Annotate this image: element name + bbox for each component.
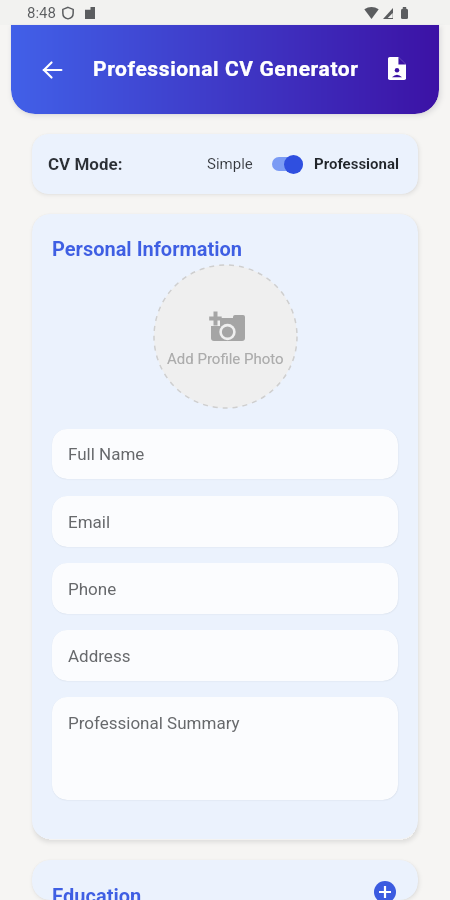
button[interactable]: Full Name <box>52 429 398 479</box>
staticText: Professional Summary <box>68 713 240 733</box>
staticText: Email <box>68 512 111 532</box>
staticText: 8:48 <box>27 4 56 22</box>
staticText: Simple <box>207 155 253 173</box>
button[interactable]: Phone <box>52 563 398 614</box>
button[interactable]: Back <box>31 49 73 91</box>
staticText: CV Mode: <box>48 154 123 174</box>
button[interactable]: Preview CV <box>378 49 416 87</box>
staticText: Personal Information <box>52 237 243 260</box>
staticText: Professional <box>314 155 399 173</box>
button[interactable] <box>272 154 303 174</box>
staticText: Full Name <box>68 444 145 464</box>
staticText: Address <box>68 646 131 666</box>
staticText: Phone <box>68 579 117 599</box>
button[interactable]: Add education <box>374 881 396 900</box>
button[interactable]: Professional Summary <box>52 697 398 800</box>
button[interactable]: Email <box>52 496 398 547</box>
button[interactable]: CV Mode: <box>32 134 418 194</box>
button[interactable]: Address <box>52 630 398 681</box>
button[interactable]: Add Profile Photo <box>153 264 298 409</box>
staticText: Professional CV Generator <box>93 57 359 82</box>
staticText: Add Profile Photo <box>167 350 284 368</box>
staticText: Education <box>52 884 142 900</box>
